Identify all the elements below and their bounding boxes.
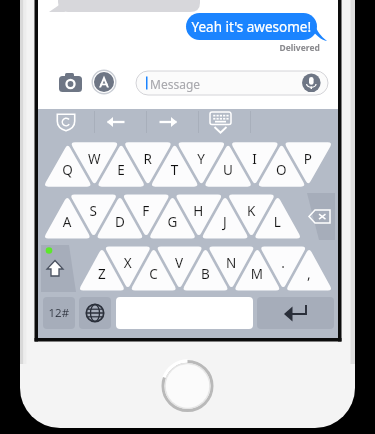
button[interactable]: iPhone messages keyboard	[0, 0, 375, 434]
